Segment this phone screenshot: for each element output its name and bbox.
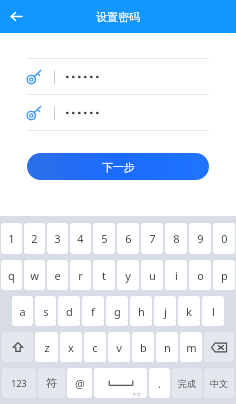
staticText: 8 — [173, 231, 180, 246]
staticText: 1 — [8, 231, 15, 246]
staticText: e — [54, 268, 61, 283]
button[interactable]: 7 — [141, 223, 163, 254]
button[interactable] — [0, 59, 236, 94]
button[interactable]: 下一步 — [27, 153, 209, 180]
staticText: y — [125, 268, 131, 283]
button[interactable]: c — [84, 332, 106, 362]
button[interactable]: 完成 — [172, 368, 202, 398]
staticText: j — [164, 304, 167, 319]
button[interactable]: 3 — [47, 223, 68, 254]
button[interactable]: d — [58, 296, 80, 326]
staticText: a — [19, 304, 26, 319]
staticText: 符 — [46, 376, 57, 390]
button[interactable]: y — [117, 260, 139, 290]
staticText: 2 — [31, 231, 38, 246]
button[interactable]: 1 — [1, 223, 22, 254]
staticText: 4 — [77, 231, 84, 246]
button[interactable]: 8 — [165, 223, 187, 254]
staticText: 完成 — [178, 378, 196, 389]
staticText: 3 — [54, 231, 61, 246]
button[interactable]: 0 — [213, 223, 235, 254]
staticText: u — [149, 268, 156, 283]
staticText: w — [30, 268, 39, 283]
staticText: 0 — [221, 231, 228, 246]
button[interactable]: r — [70, 260, 91, 290]
staticText: k — [186, 304, 192, 319]
button[interactable]: 符 — [38, 368, 65, 398]
staticText: 5 — [101, 231, 108, 246]
button[interactable]: 中文 — [204, 368, 234, 398]
staticText: v — [116, 340, 122, 355]
button[interactable]: Shift — [2, 332, 33, 362]
staticText: g — [114, 304, 121, 319]
staticText: 6 — [125, 231, 132, 246]
button[interactable]: 6 — [117, 223, 139, 254]
button[interactable]: e — [47, 260, 68, 290]
staticText: t — [102, 268, 106, 283]
button[interactable]: f — [82, 296, 104, 326]
button[interactable]: k — [178, 296, 200, 326]
staticText: q — [8, 268, 15, 283]
button[interactable]: . — [149, 368, 170, 398]
button[interactable]: 123 — [2, 368, 36, 398]
button[interactable]: @ — [67, 368, 92, 398]
staticText: 9 — [197, 231, 204, 246]
button[interactable]: j — [154, 296, 176, 326]
staticText: r — [78, 268, 83, 283]
staticText: m — [186, 340, 197, 355]
staticText: f — [91, 304, 95, 319]
button[interactable]: t — [93, 260, 115, 290]
staticText: h — [138, 304, 145, 319]
button[interactable]: n — [156, 332, 178, 362]
staticText: d — [66, 304, 73, 319]
button[interactable]: a — [12, 296, 33, 326]
staticText: 中文 — [133, 392, 141, 397]
button[interactable]: i — [165, 260, 187, 290]
staticText: b — [140, 340, 147, 355]
staticText: 123 — [11, 377, 27, 389]
button[interactable]: o — [189, 260, 211, 290]
staticText: n — [164, 340, 171, 355]
button[interactable]: l — [202, 296, 224, 326]
button[interactable]: h — [130, 296, 152, 326]
staticText: i — [175, 268, 178, 283]
staticText: p — [221, 268, 228, 283]
button[interactable]: 9 — [189, 223, 211, 254]
button[interactable]: m — [180, 332, 202, 362]
button[interactable]: Back — [0, 0, 33, 33]
staticText: l — [212, 304, 215, 319]
staticText: 中文 — [210, 378, 228, 389]
button[interactable]: w — [24, 260, 45, 290]
staticText: 下一步 — [102, 160, 135, 174]
button[interactable]: v — [108, 332, 130, 362]
button[interactable]: u — [141, 260, 163, 290]
button[interactable]: Space — [94, 368, 147, 398]
staticText: s — [43, 304, 49, 319]
staticText: z — [44, 340, 50, 355]
button[interactable] — [0, 95, 236, 130]
staticText: o — [197, 268, 204, 283]
button[interactable]: z — [35, 332, 58, 362]
staticText: 7 — [149, 231, 156, 246]
staticText: 设置密码 — [96, 10, 140, 24]
button[interactable]: b — [132, 332, 154, 362]
staticText: x — [68, 340, 74, 355]
button[interactable]: q — [1, 260, 22, 290]
staticText: @ — [75, 376, 85, 391]
staticText: . — [158, 376, 161, 391]
button[interactable]: g — [106, 296, 128, 326]
staticText: c — [92, 340, 98, 355]
button[interactable]: Backspace — [204, 332, 234, 362]
button[interactable]: p — [213, 260, 235, 290]
button[interactable]: 2 — [24, 223, 45, 254]
button[interactable]: 5 — [93, 223, 115, 254]
button[interactable]: x — [60, 332, 82, 362]
button[interactable]: s — [35, 296, 56, 326]
button[interactable]: 4 — [70, 223, 91, 254]
